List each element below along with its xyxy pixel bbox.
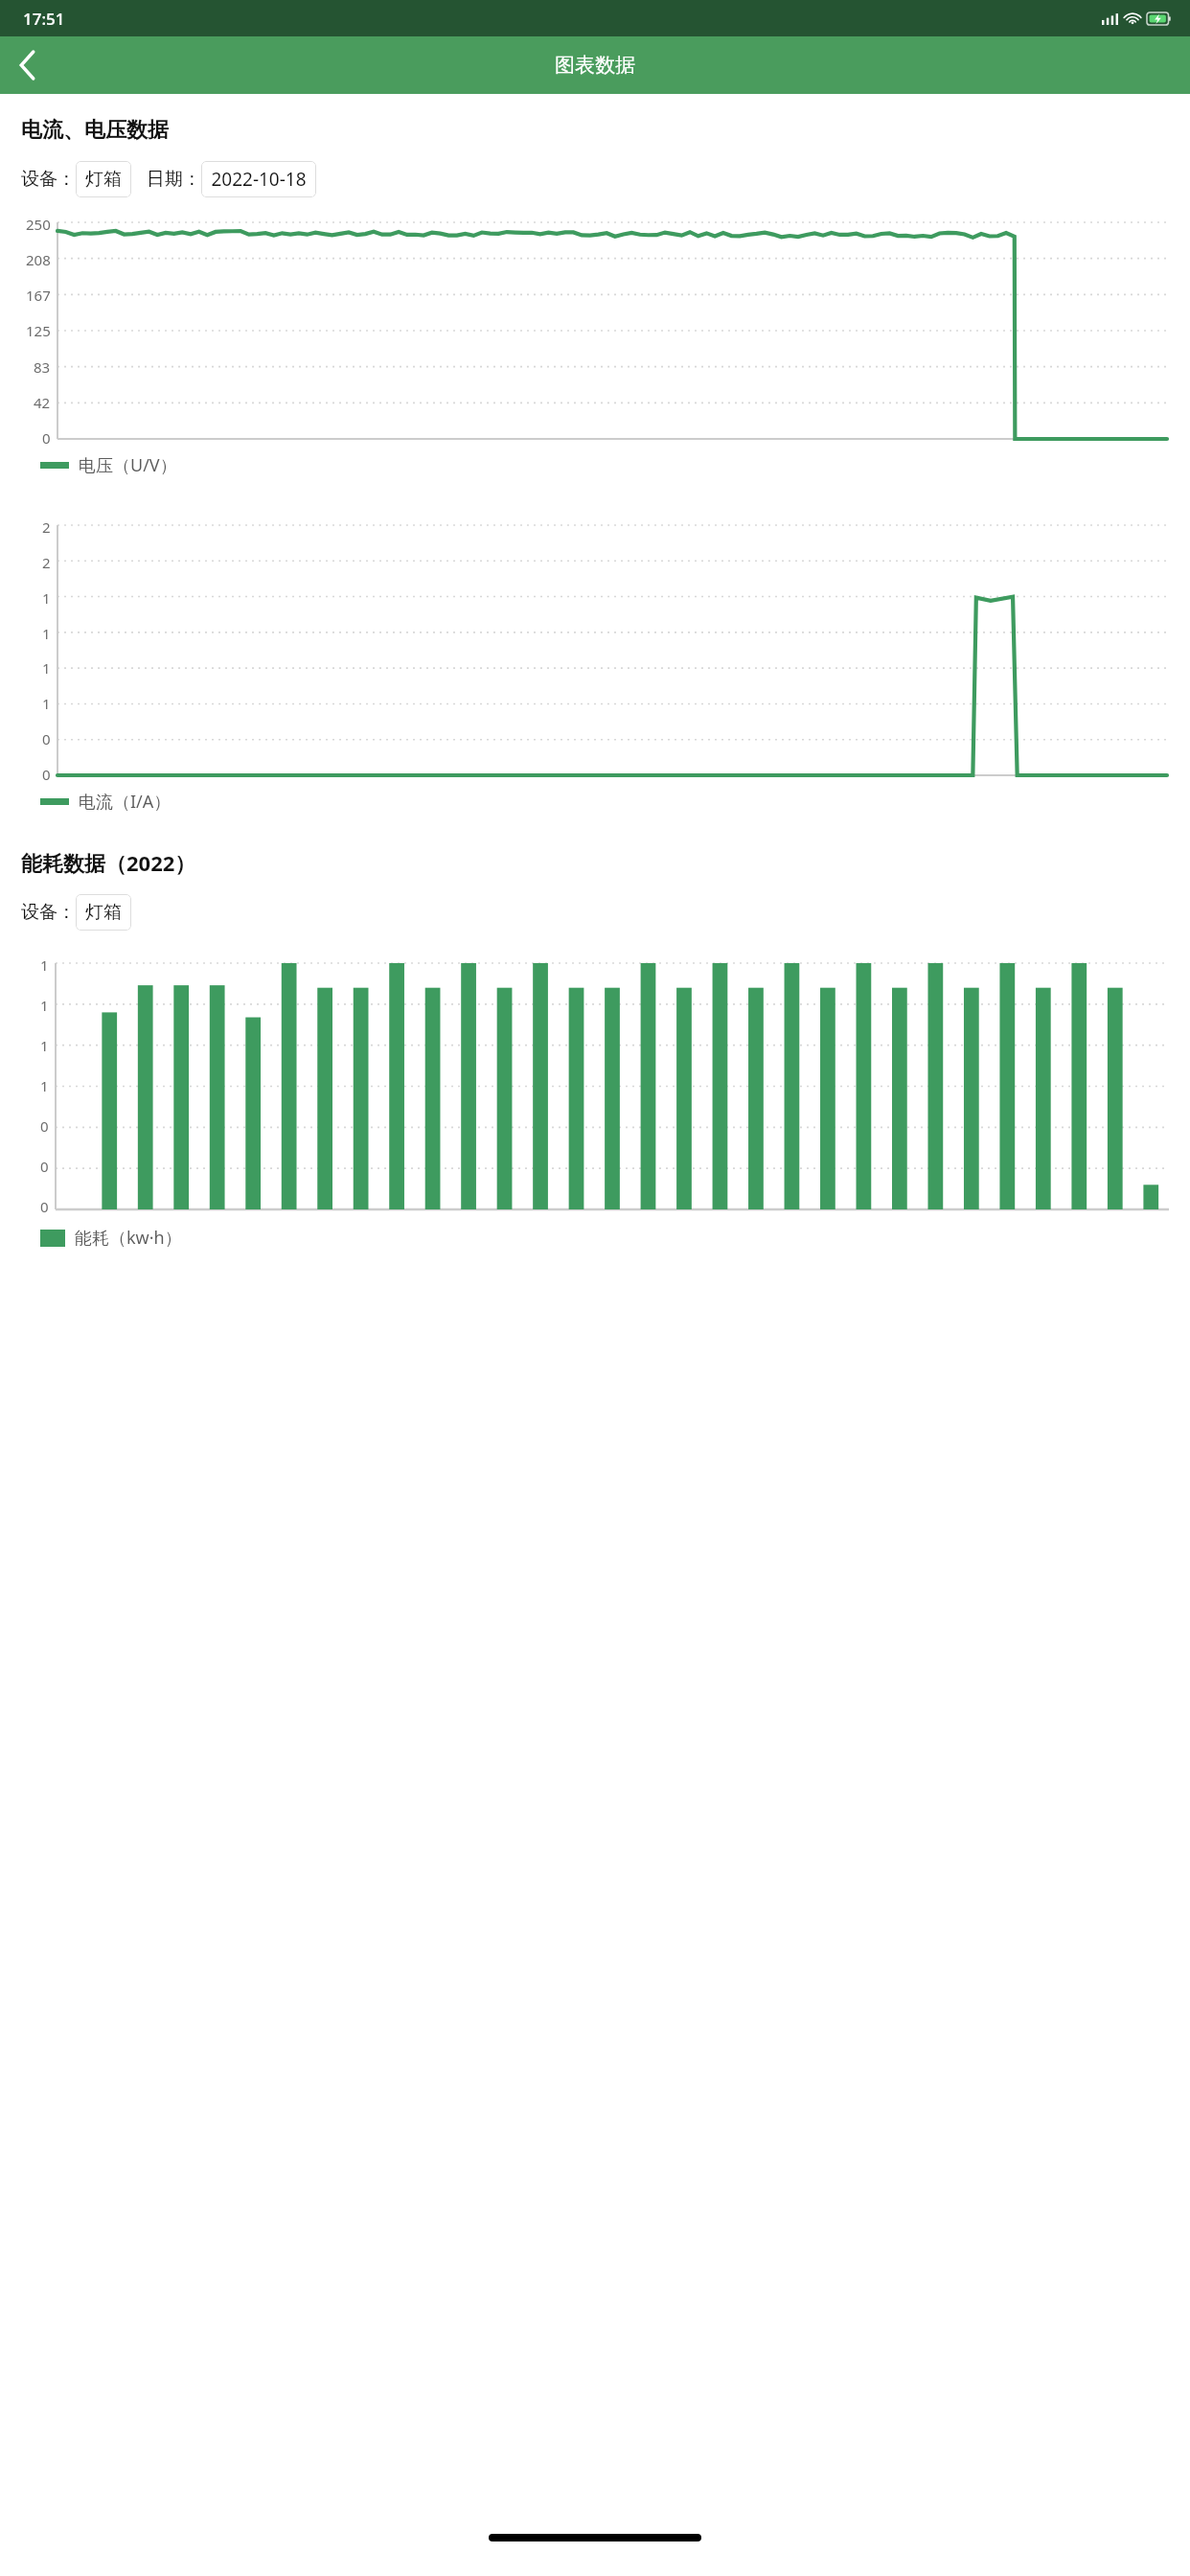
staticText: 1	[42, 694, 51, 713]
staticText: 250	[26, 215, 51, 234]
staticText: 电压（U/V）	[79, 453, 177, 477]
staticText: 0	[40, 1197, 49, 1216]
staticText: 图表数据	[555, 53, 635, 78]
staticText: 1	[40, 1036, 49, 1055]
staticText: 1	[42, 588, 51, 608]
staticText: 125	[26, 321, 51, 340]
button[interactable]: Back	[0, 38, 54, 92]
button[interactable]: 2022-10-18	[201, 161, 316, 197]
staticText: 167	[26, 286, 51, 305]
staticText: 设备：	[21, 168, 76, 191]
staticText: 2	[42, 517, 51, 537]
staticText: 208	[26, 250, 51, 269]
staticText: 42	[34, 393, 51, 412]
staticText: 0	[42, 765, 51, 784]
staticText: 1	[42, 624, 51, 643]
staticText: 1	[40, 996, 49, 1015]
staticText: 0	[42, 729, 51, 748]
staticText: 电流（I/A）	[79, 790, 172, 814]
staticText: 2	[42, 553, 51, 572]
staticText: 设备：	[21, 901, 76, 924]
staticText: 0	[40, 1157, 49, 1176]
staticText: 2022-10-18	[211, 167, 307, 192]
staticText: 能耗（kw·h）	[75, 1226, 182, 1250]
staticText: 83	[34, 357, 51, 377]
staticText: 电流、电压数据	[21, 117, 169, 144]
button[interactable]: 灯箱	[76, 161, 131, 197]
staticText: 0	[42, 428, 51, 448]
staticText: 灯箱	[85, 901, 122, 924]
staticText: 17:51	[23, 8, 65, 30]
staticText: 1	[42, 658, 51, 678]
staticText: 0	[40, 1116, 49, 1136]
button[interactable]: 灯箱	[76, 894, 131, 931]
staticText: 能耗数据（2022）	[21, 848, 196, 877]
staticText: 1	[40, 955, 49, 975]
staticText: 日期：	[147, 168, 201, 191]
staticText: 灯箱	[85, 168, 122, 191]
staticText: 1	[40, 1076, 49, 1095]
